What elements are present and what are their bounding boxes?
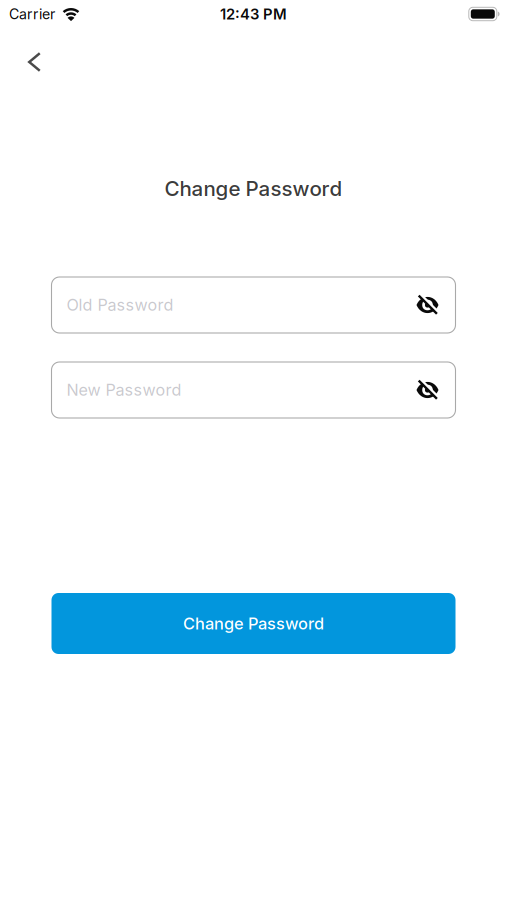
staticText: New Password (66, 380, 181, 400)
button[interactable]: Old Password (51, 277, 455, 333)
staticText: Change Password (183, 614, 324, 633)
button[interactable]: New Password (51, 362, 455, 418)
staticText: Carrier (9, 5, 55, 22)
button[interactable]: Back (12, 44, 56, 80)
button[interactable]: Show password (408, 380, 455, 400)
button[interactable]: Show password (408, 295, 455, 315)
staticText: Change Password (164, 176, 342, 201)
staticText: Old Password (66, 295, 173, 315)
staticText: 12:43 PM (220, 5, 287, 23)
button[interactable]: Change Password (51, 593, 455, 654)
